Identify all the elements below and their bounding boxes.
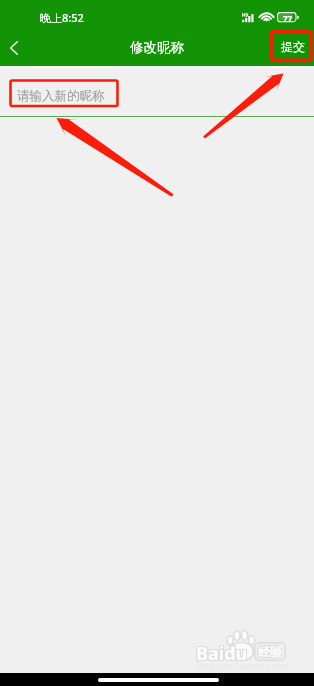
staticText: Baidu bbox=[195, 642, 247, 667]
staticText: 晚上8:52 bbox=[40, 10, 84, 25]
staticText: 经验 bbox=[258, 644, 282, 659]
staticText: Baidu bbox=[196, 642, 248, 667]
staticText: 经验 bbox=[257, 644, 281, 659]
staticText: 经验 bbox=[258, 645, 282, 660]
staticText: Baidu bbox=[197, 641, 249, 666]
button[interactable]: Back bbox=[0, 31, 33, 64]
staticText: 请输入新的昵称 bbox=[17, 88, 105, 104]
staticText: 经验 bbox=[257, 645, 281, 660]
staticText: 经验 bbox=[258, 643, 282, 658]
staticText: Baidu bbox=[197, 640, 249, 665]
staticText: Baidu bbox=[197, 642, 249, 667]
staticText: 经验 bbox=[257, 643, 281, 658]
staticText: Baidu bbox=[195, 641, 247, 666]
button[interactable]: 提交 bbox=[274, 34, 310, 58]
staticText: Baidu bbox=[196, 641, 248, 666]
staticText: 77 bbox=[283, 13, 293, 24]
staticText: 经验 bbox=[258, 645, 282, 660]
staticText: 修改昵称 bbox=[130, 39, 184, 56]
button[interactable]: 请输入新的昵称 bbox=[9, 79, 119, 108]
staticText: 经验 bbox=[258, 644, 282, 659]
staticText: Baidu bbox=[195, 640, 247, 665]
staticText: 经验 bbox=[258, 643, 282, 658]
staticText: 提交 bbox=[281, 39, 305, 54]
staticText: Baidu bbox=[196, 640, 248, 665]
staticText: jingyan.baidu.com bbox=[196, 659, 288, 673]
